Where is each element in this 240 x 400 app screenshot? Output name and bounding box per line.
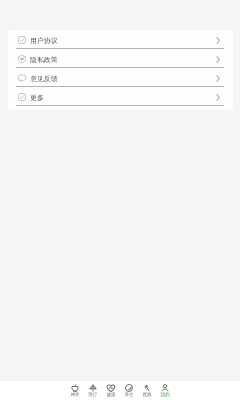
staticText: 用户协议 [30,36,58,45]
staticText: 医疗 [88,392,98,398]
staticText: 神农 [70,392,80,398]
button[interactable]: 隐私政策 [8,49,233,67]
button[interactable]: 视频 [138,383,156,398]
button[interactable]: 更多 [8,87,233,105]
button[interactable]: 意见反馈 [8,68,233,86]
staticText: 健康 [106,392,116,398]
staticText: 隐私政策 [30,55,58,64]
button[interactable]: 用户协议 [8,30,233,48]
button[interactable]: 我的 [156,383,174,398]
staticText: 我的 [160,392,170,398]
button[interactable]: 养生 [120,383,138,398]
staticText: 视频 [142,392,152,398]
button[interactable]: 健康 [102,383,120,398]
staticText: 意见反馈 [30,74,58,83]
button[interactable]: 医疗 [84,383,102,398]
button[interactable]: 神农 [66,383,84,398]
staticText: 养生 [124,392,134,398]
staticText: 更多 [30,93,44,102]
